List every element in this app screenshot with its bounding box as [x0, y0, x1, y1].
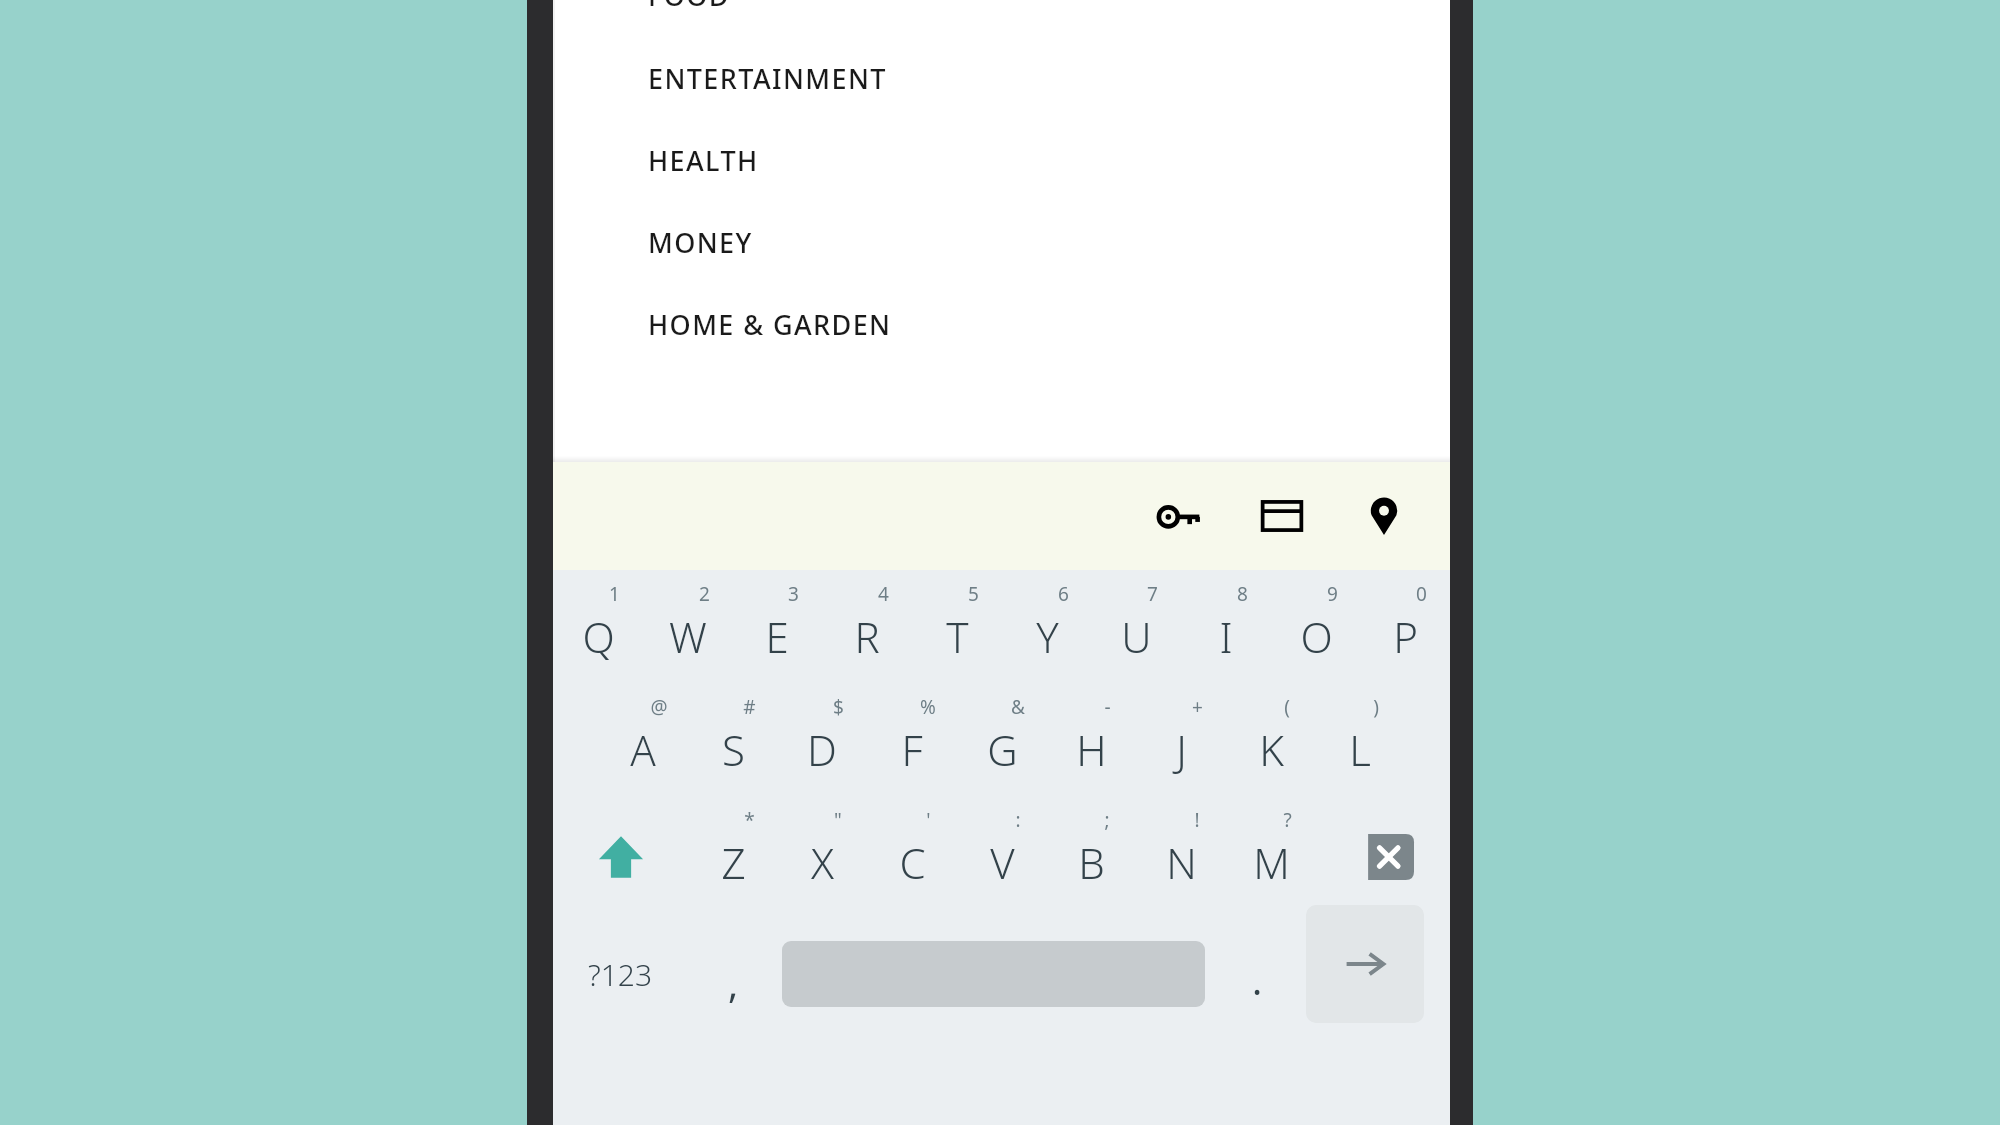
staticText: HEALTH: [648, 142, 759, 179]
button[interactable]: Backspace: [1315, 796, 1450, 909]
staticText: 9: [1327, 581, 1338, 607]
button[interactable]: $: [777, 683, 867, 796]
staticText: I: [1219, 608, 1233, 665]
button[interactable]: &: [957, 683, 1047, 796]
button[interactable]: 4: [822, 570, 912, 683]
button[interactable]: -: [1046, 683, 1136, 796]
staticText: 5: [968, 581, 979, 607]
staticText: N: [1166, 834, 1197, 891]
button[interactable]: 2: [643, 570, 733, 683]
button[interactable]: Space: [782, 909, 1205, 1039]
staticText: H: [1076, 721, 1107, 778]
button[interactable]: ": [777, 796, 867, 909]
staticText: (: [1284, 694, 1290, 720]
staticText: ): [1373, 694, 1379, 720]
staticText: T: [946, 608, 969, 665]
staticText: G: [987, 721, 1018, 778]
button[interactable]: ?: [1226, 796, 1316, 909]
button[interactable]: *: [688, 796, 778, 909]
button[interactable]: 7: [1091, 570, 1181, 683]
staticText: ENTERTAINMENT: [648, 60, 887, 97]
button[interactable]: !: [1136, 796, 1226, 909]
staticText: Y: [1036, 608, 1059, 665]
staticText: ?: [1283, 807, 1292, 833]
staticText: B: [1078, 834, 1105, 891]
button[interactable]: ': [867, 796, 957, 909]
staticText: A: [630, 721, 656, 778]
staticText: 8: [1237, 581, 1248, 607]
staticText: ": [834, 807, 842, 833]
staticText: R: [854, 608, 880, 665]
staticText: *: [744, 807, 755, 833]
staticText: L: [1349, 721, 1371, 778]
button[interactable]: HOME & GARDEN: [553, 295, 1450, 353]
staticText: S: [722, 721, 745, 778]
staticText: F: [901, 721, 923, 778]
button[interactable]: Passwords: [1142, 478, 1218, 554]
staticText: %: [920, 694, 936, 720]
staticText: P: [1393, 608, 1418, 665]
button[interactable]: 3: [732, 570, 822, 683]
button[interactable]: ?123: [553, 909, 688, 1039]
button[interactable]: 6: [1002, 570, 1092, 683]
button[interactable]: (: [1226, 683, 1316, 796]
staticText: 4: [878, 581, 889, 607]
staticText: .: [1252, 954, 1263, 1006]
staticText: O: [1300, 608, 1333, 665]
staticText: +: [1192, 694, 1203, 720]
button[interactable]: @: [598, 683, 688, 796]
staticText: V: [990, 834, 1015, 891]
staticText: FOOD: [648, 0, 730, 14]
button[interactable]: FOOD: [553, 0, 1450, 24]
button[interactable]: .: [1212, 909, 1302, 1039]
staticText: 7: [1147, 581, 1158, 607]
button[interactable]: #: [688, 683, 778, 796]
staticText: 1: [609, 581, 620, 607]
button[interactable]: 0: [1360, 570, 1450, 683]
staticText: 2: [699, 581, 710, 607]
staticText: &: [1011, 694, 1025, 720]
button[interactable]: 9: [1271, 570, 1361, 683]
staticText: Q: [582, 608, 615, 665]
staticText: 6: [1058, 581, 1069, 607]
button[interactable]: MONEY: [553, 213, 1450, 271]
staticText: ?123: [588, 954, 653, 995]
staticText: :: [1015, 807, 1021, 833]
staticText: ,: [728, 957, 739, 1009]
staticText: !: [1194, 807, 1200, 833]
staticText: @: [650, 694, 668, 720]
staticText: ': [926, 807, 931, 833]
staticText: HOME & GARDEN: [648, 306, 892, 343]
button[interactable]: +: [1136, 683, 1226, 796]
button[interactable]: Addresses: [1346, 478, 1422, 554]
button[interactable]: ENTERTAINMENT: [553, 49, 1450, 107]
staticText: E: [765, 608, 789, 665]
button[interactable]: %: [867, 683, 957, 796]
staticText: X: [811, 834, 834, 891]
staticText: C: [899, 834, 926, 891]
button[interactable]: ,: [688, 909, 778, 1039]
staticText: U: [1121, 608, 1152, 665]
staticText: K: [1259, 721, 1284, 778]
staticText: J: [1176, 721, 1187, 778]
button[interactable]: 1: [553, 570, 643, 683]
button[interactable]: ): [1315, 683, 1405, 796]
button[interactable]: Shift: [553, 796, 688, 909]
staticText: MONEY: [648, 224, 753, 261]
button[interactable]: Enter: [1306, 905, 1424, 1023]
button[interactable]: :: [957, 796, 1047, 909]
staticText: M: [1253, 834, 1290, 891]
button[interactable]: Payment methods: [1244, 478, 1320, 554]
staticText: 0: [1416, 581, 1427, 607]
staticText: #: [743, 694, 756, 720]
staticText: ;: [1104, 807, 1110, 833]
staticText: Z: [721, 834, 746, 891]
button[interactable]: 5: [912, 570, 1002, 683]
staticText: D: [807, 721, 837, 778]
staticText: -: [1104, 694, 1111, 720]
button[interactable]: ;: [1046, 796, 1136, 909]
button[interactable]: HEALTH: [553, 131, 1450, 189]
staticText: 3: [788, 581, 799, 607]
button[interactable]: 8: [1181, 570, 1271, 683]
staticText: W: [669, 608, 707, 665]
